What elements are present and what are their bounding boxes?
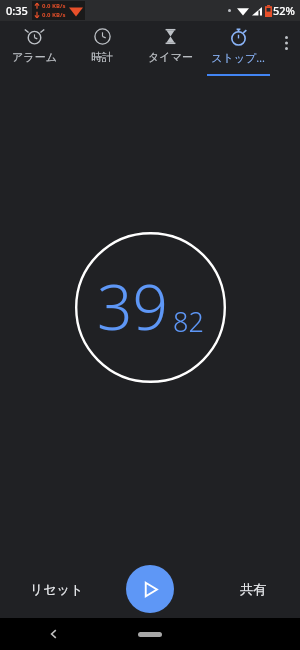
button[interactable]: アラーム — [0, 21, 68, 76]
staticText: 共有 — [240, 581, 266, 597]
button[interactable]: タイマー — [136, 21, 204, 76]
button[interactable]: More options — [272, 21, 300, 76]
staticText: アラーム — [12, 50, 57, 64]
staticText: 39 — [97, 264, 168, 348]
staticText: リセット — [30, 581, 84, 597]
button[interactable]: ストップ… — [204, 21, 272, 76]
staticText: ストップ… — [211, 50, 265, 65]
button[interactable]: リセット — [18, 573, 96, 605]
button[interactable]: Back — [42, 622, 66, 646]
staticText: 0:35 — [6, 3, 28, 18]
staticText: 0.0 KB/s — [42, 11, 66, 19]
staticText: 0.0 KB/s — [42, 2, 66, 10]
button[interactable]: Start — [126, 565, 174, 613]
button[interactable]: 共有 — [228, 573, 278, 605]
staticText: 時計 — [91, 50, 113, 64]
staticText: 82 — [173, 303, 204, 340]
staticText: 52% — [273, 3, 295, 18]
button[interactable]: Home — [138, 632, 162, 637]
staticText: タイマー — [148, 50, 193, 64]
button[interactable]: 時計 — [68, 21, 136, 76]
